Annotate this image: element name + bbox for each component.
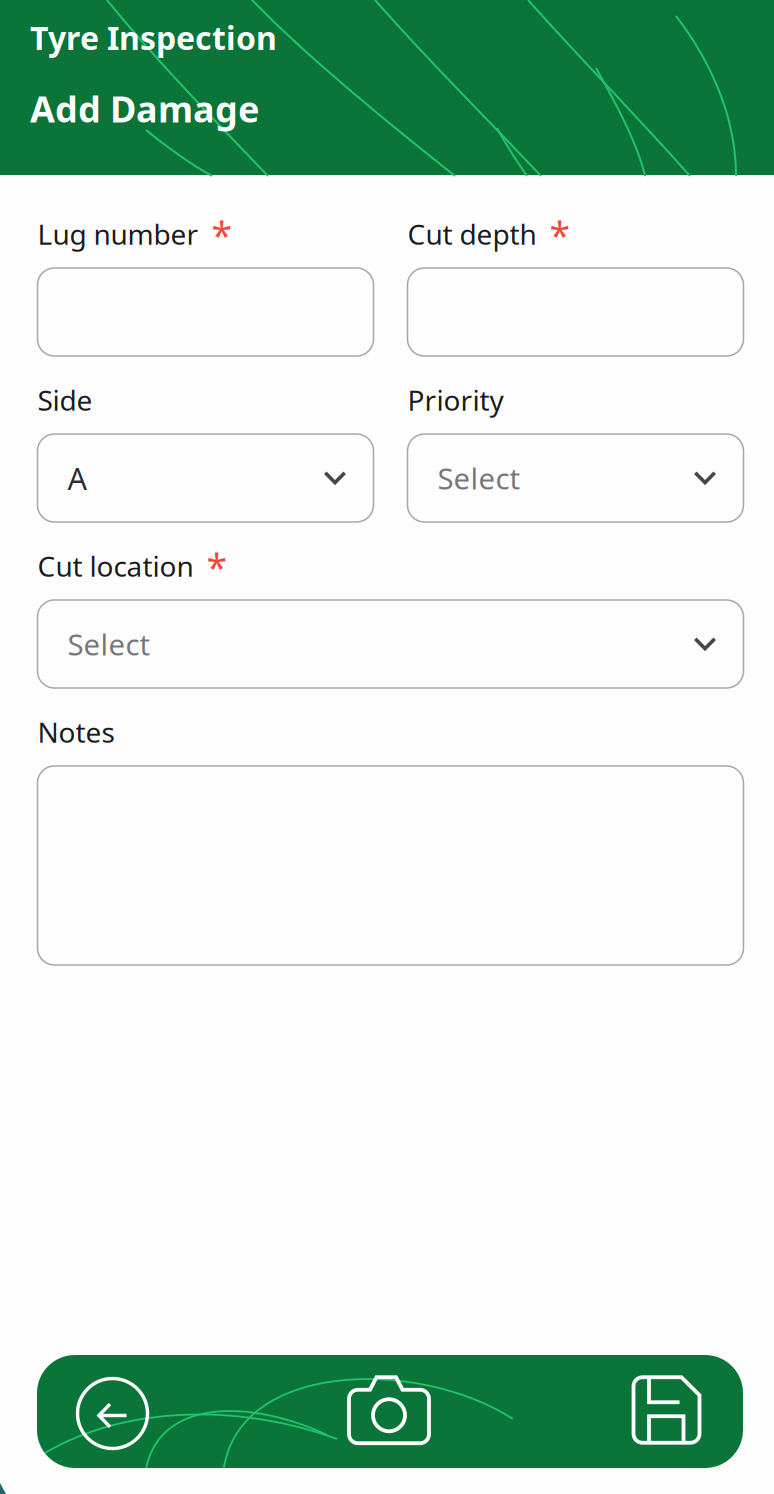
button[interactable] <box>37 268 373 356</box>
staticText: Select <box>437 458 520 497</box>
button[interactable]: A <box>37 434 373 522</box>
staticText: * <box>549 210 570 260</box>
staticText: Tyre Inspection <box>30 16 277 59</box>
button[interactable]: Save <box>593 1355 743 1468</box>
staticText: * <box>211 210 232 260</box>
button[interactable] <box>37 766 743 965</box>
staticText: Cut depth <box>407 215 536 253</box>
staticText: Side <box>37 381 92 419</box>
staticText: Notes <box>37 713 114 751</box>
staticText: Add Damage <box>30 85 259 132</box>
button[interactable]: Take photo <box>188 1355 593 1468</box>
button[interactable]: Back <box>37 1355 188 1468</box>
staticText: * <box>206 542 227 592</box>
staticText: Lug number <box>37 215 198 253</box>
button[interactable]: Select <box>407 434 743 522</box>
button[interactable] <box>407 268 743 356</box>
staticText: Cut location <box>37 547 193 585</box>
staticText: Priority <box>407 381 503 419</box>
button[interactable]: Select <box>37 600 743 688</box>
staticText: A <box>67 458 87 498</box>
staticText: Select <box>67 624 150 663</box>
